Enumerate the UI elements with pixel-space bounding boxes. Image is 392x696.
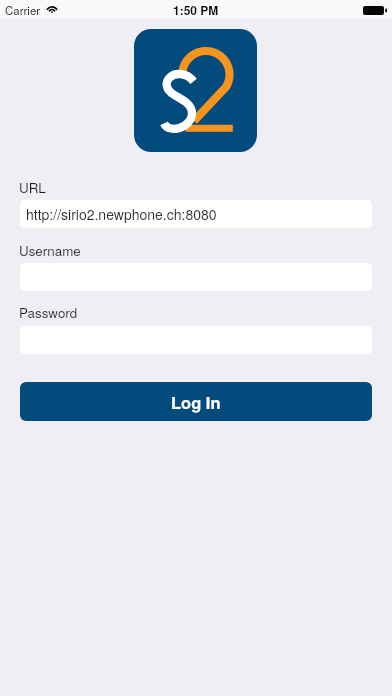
other: Sirio2 logo <box>134 29 257 152</box>
staticText: http://sirio2.newphone.ch:8080 <box>26 204 217 224</box>
staticText: Password <box>19 303 78 322</box>
staticText: Log In <box>171 390 221 414</box>
staticText: 1:50 PM <box>173 1 219 18</box>
button[interactable]: Log In <box>20 382 372 421</box>
staticText: Carrier <box>5 2 41 18</box>
button[interactable]: http://sirio2.newphone.ch:8080 <box>20 200 372 228</box>
staticText: Username <box>19 241 81 260</box>
staticText: URL <box>19 178 46 197</box>
